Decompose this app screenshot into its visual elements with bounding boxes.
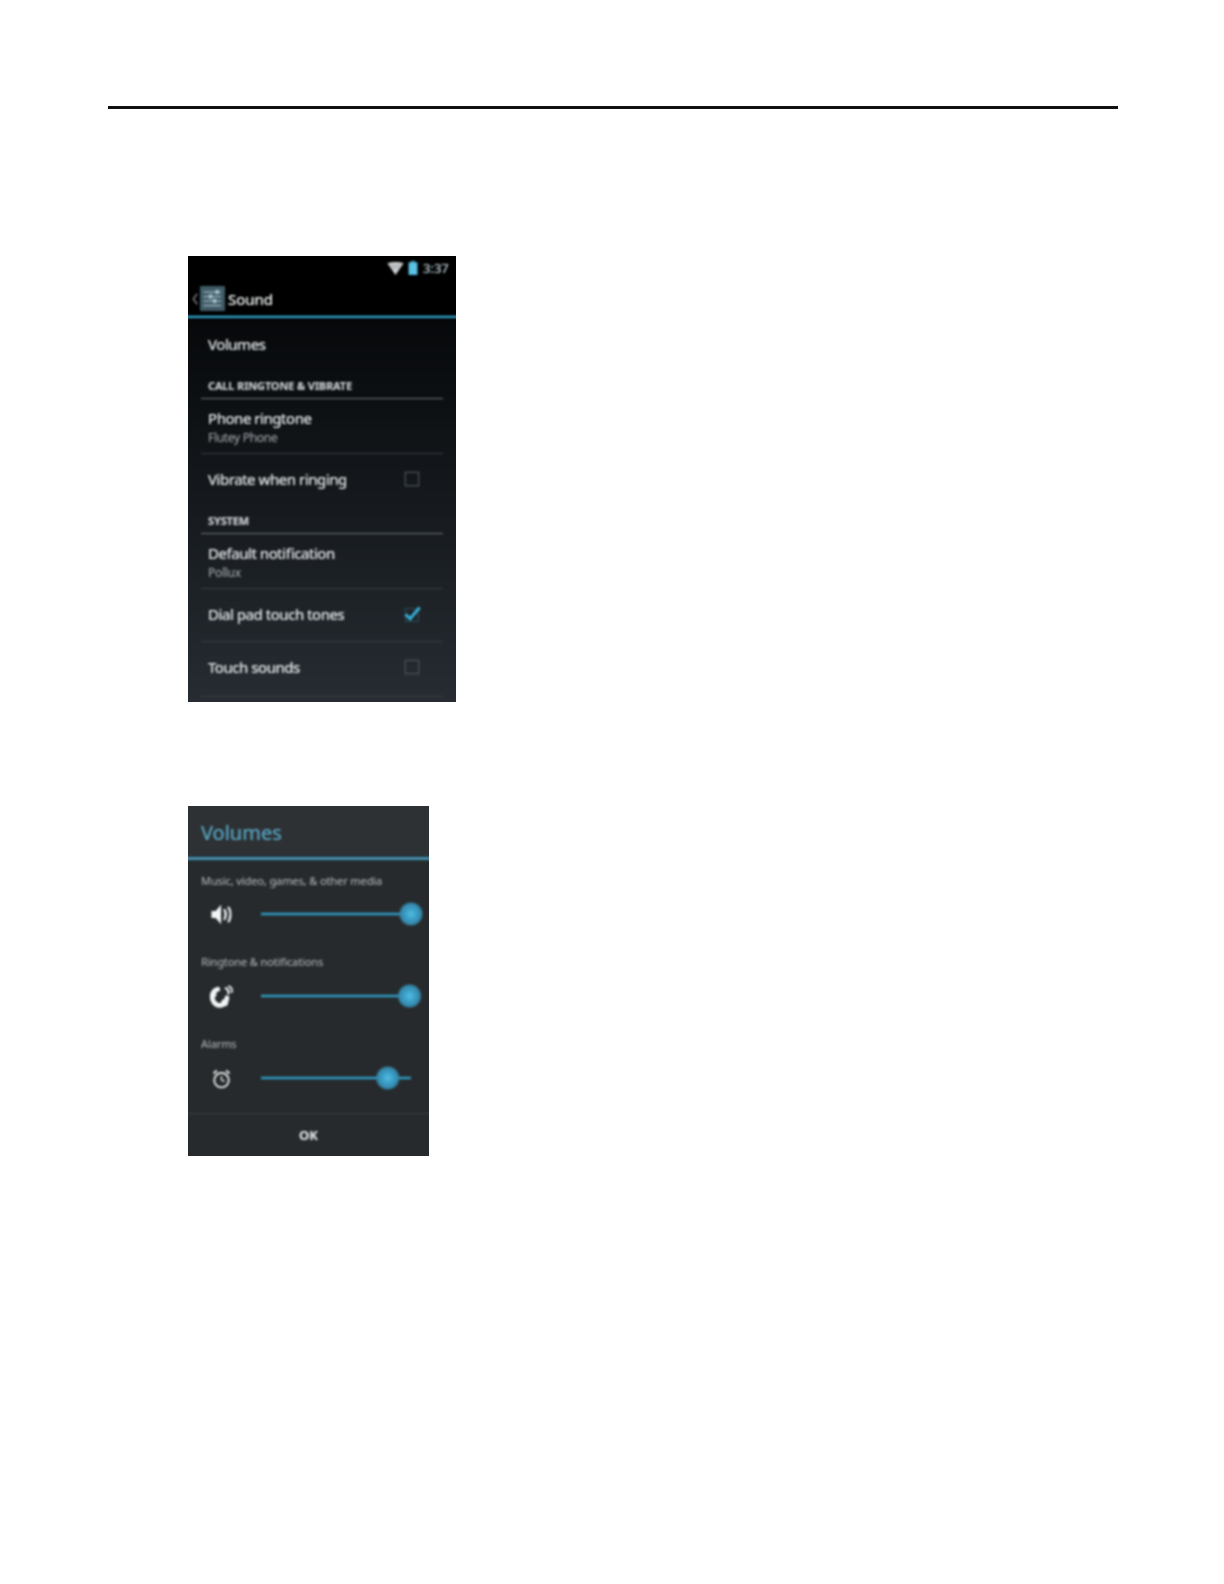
staticText: Phone ringtone <box>208 408 312 428</box>
button[interactable]: Dial pad touch tones <box>188 588 456 641</box>
staticText: Volumes <box>208 334 266 354</box>
button[interactable]: Navigate up to Settings <box>188 282 456 315</box>
button[interactable]: Volumes <box>188 318 456 373</box>
staticText: Alarms <box>201 1036 237 1051</box>
staticText: Default notification <box>208 543 335 563</box>
button[interactable]: Default notification <box>188 533 456 588</box>
staticText: CALL RINGTONE & VIBRATE <box>208 378 352 393</box>
button[interactable]: Vibrate when ringing <box>188 453 456 506</box>
staticText: Ringtone & notifications <box>201 954 324 969</box>
button[interactable]: Alarm volume <box>188 1064 429 1092</box>
staticText: 3:37 <box>423 259 449 277</box>
staticText: Dial pad touch tones <box>208 604 345 624</box>
staticText: Sound <box>228 289 274 309</box>
staticText: Pollux <box>208 564 241 580</box>
staticText: Flutey Phone <box>208 429 278 445</box>
staticText: SYSTEM <box>208 513 249 528</box>
staticText: Touch sounds <box>208 657 300 677</box>
button[interactable]: Touch sounds <box>188 641 456 696</box>
button[interactable]: Media volume <box>188 900 429 928</box>
button[interactable]: Phone ringtone <box>188 398 456 453</box>
staticText: OK <box>299 1126 318 1144</box>
staticText: Volumes <box>201 819 282 846</box>
button[interactable]: OK <box>188 1114 429 1156</box>
staticText: Vibrate when ringing <box>208 469 347 489</box>
button[interactable]: Ringtone volume <box>188 982 429 1010</box>
staticText: Music, video, games, & other media <box>201 873 383 888</box>
